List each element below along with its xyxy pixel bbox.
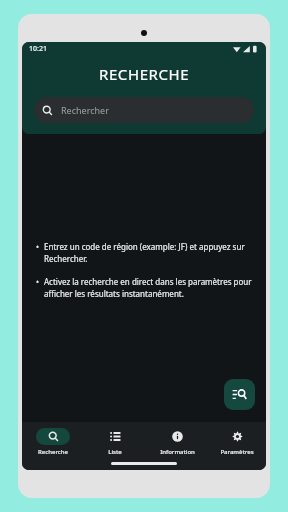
button[interactable]: Rechercher une personne bbox=[224, 379, 255, 410]
staticText: • bbox=[36, 241, 40, 252]
staticText: Activez la recherche en direct dans les … bbox=[44, 276, 252, 300]
button[interactable]: Paramètres bbox=[208, 426, 266, 458]
staticText: Paramètres bbox=[220, 448, 254, 456]
staticText: Recherche bbox=[38, 448, 68, 456]
staticText: Entrez un code de région (example: JF) e… bbox=[44, 241, 252, 265]
button[interactable]: Rechercher bbox=[34, 97, 254, 123]
staticText: Information bbox=[160, 448, 195, 456]
button[interactable]: Information bbox=[146, 426, 208, 458]
button[interactable]: Liste bbox=[84, 426, 146, 458]
staticText: Rechercher bbox=[61, 104, 109, 116]
staticText: Liste bbox=[108, 448, 122, 456]
button[interactable]: Recherche bbox=[22, 426, 84, 458]
staticText: RECHERCHE bbox=[99, 64, 190, 84]
staticText: 10:21 bbox=[29, 44, 47, 54]
staticText: • bbox=[36, 276, 40, 287]
